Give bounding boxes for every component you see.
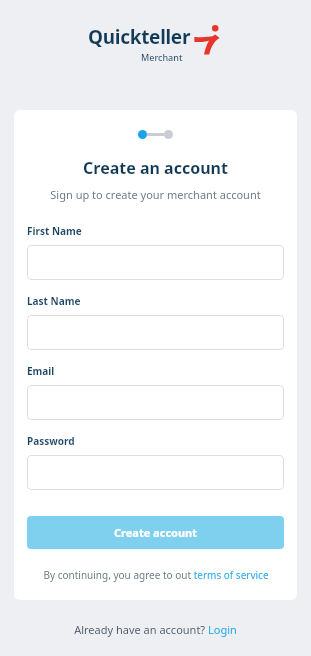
staticText: Sign up to create your merchant account	[50, 187, 261, 202]
staticText: By continuing, you agree to out terms of…	[43, 568, 269, 582]
staticText: Last Name	[27, 294, 81, 308]
staticText: Already have an account? Login	[74, 622, 237, 637]
button[interactable]: By continuing, you agree to out terms of…	[27, 568, 284, 582]
button[interactable]: Email	[27, 385, 284, 420]
button[interactable]: Password	[27, 455, 284, 490]
staticText: Email	[27, 364, 55, 378]
other: Quickteller Merchant logo	[88, 24, 223, 69]
staticText: Merchant	[141, 51, 183, 63]
staticText: Quickteller	[88, 24, 191, 50]
staticText: Password	[27, 434, 75, 448]
button[interactable]: Already have an account? Login	[0, 622, 311, 637]
button[interactable]: First Name	[27, 245, 284, 280]
button[interactable]: Create account	[27, 516, 284, 549]
staticText: First Name	[27, 224, 82, 238]
button[interactable]: Last Name	[27, 315, 284, 350]
staticText: Create account	[114, 525, 198, 540]
staticText: Create an account	[83, 157, 228, 179]
